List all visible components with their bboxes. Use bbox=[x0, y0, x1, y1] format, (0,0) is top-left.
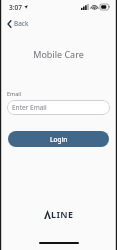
button[interactable]: Back bbox=[5, 17, 31, 30]
button[interactable]: Login bbox=[8, 131, 109, 147]
staticText: Enter Email bbox=[12, 103, 47, 112]
staticText: Mobile Care bbox=[33, 48, 84, 60]
staticText: 3:07 bbox=[9, 3, 22, 12]
button[interactable]: Enter Email bbox=[7, 100, 110, 115]
staticText: LINE bbox=[51, 208, 74, 220]
staticText: Back bbox=[14, 19, 29, 28]
staticText: Login bbox=[50, 135, 68, 144]
staticText: Email bbox=[7, 90, 22, 97]
